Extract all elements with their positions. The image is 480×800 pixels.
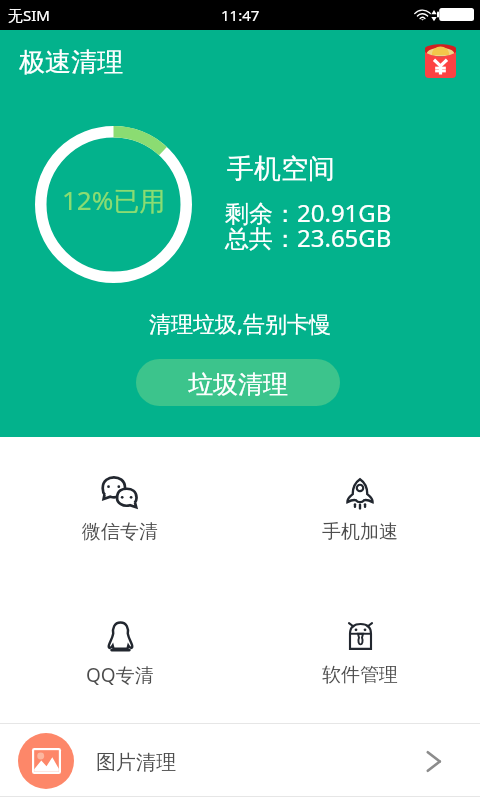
staticText: 无SIM: [8, 5, 50, 25]
button[interactable]: 手机加速: [240, 437, 480, 580]
staticText: 图片清理: [96, 750, 176, 775]
button[interactable]: 12%已用: [35, 126, 192, 283]
staticText: 11:47: [221, 5, 260, 25]
button[interactable]: 垃圾清理: [136, 359, 340, 406]
staticText: 总共：23.65GB: [225, 221, 392, 254]
staticText: 软件管理: [322, 663, 398, 687]
staticText: 手机空间: [227, 152, 335, 186]
button[interactable]: 红包: [418, 38, 462, 82]
staticText: 手机加速: [322, 520, 398, 544]
staticText: 剩余：20.91GB: [225, 196, 392, 229]
button[interactable]: QQ专清: [0, 580, 240, 723]
button[interactable]: 软件管理: [240, 580, 480, 723]
button[interactable]: 图片清理: [0, 724, 480, 800]
staticText: 极速清理: [19, 46, 123, 79]
button[interactable]: 微信专清: [0, 437, 240, 580]
staticText: 12%已用: [62, 182, 166, 218]
staticText: 微信专清: [82, 520, 158, 544]
staticText: QQ专清: [86, 662, 154, 688]
staticText: 清理垃圾,告别卡慢: [0, 308, 480, 338]
staticText: 垃圾清理: [188, 369, 288, 400]
